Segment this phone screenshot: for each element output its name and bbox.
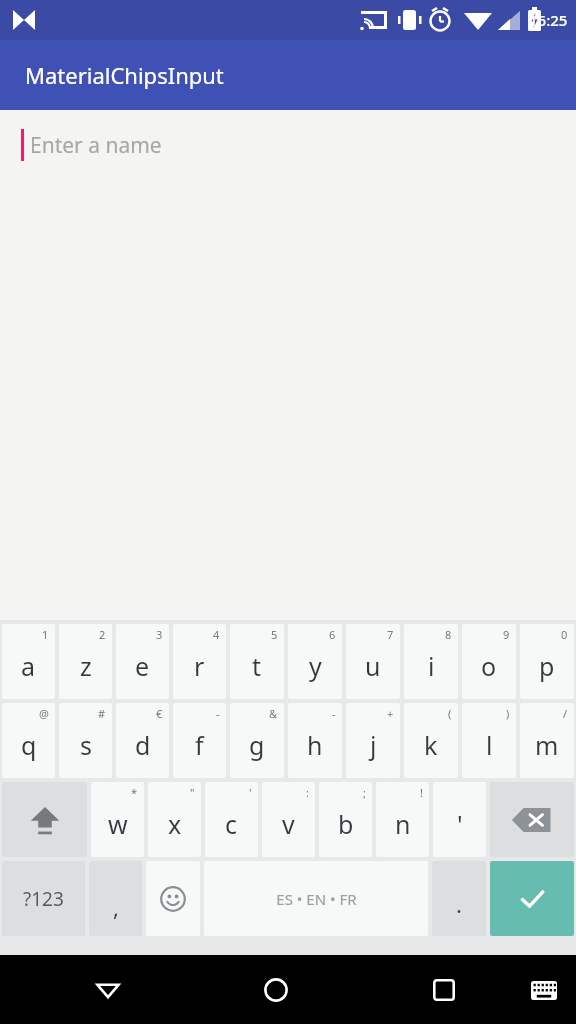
staticText: c <box>225 807 238 841</box>
button[interactable]: Switch keyboard <box>516 962 572 1018</box>
staticText: w <box>108 807 128 841</box>
staticText: u <box>365 649 381 683</box>
button[interactable]: & <box>230 703 284 778</box>
button[interactable]: ' <box>433 782 486 857</box>
button[interactable]: . <box>432 861 486 936</box>
staticText: j <box>370 728 377 762</box>
staticText: z <box>80 649 92 683</box>
staticText: k <box>424 728 438 762</box>
staticText: ! <box>420 785 423 800</box>
button[interactable]: ( <box>404 703 458 778</box>
staticText: y <box>309 649 322 683</box>
staticText: 4 <box>213 627 220 642</box>
staticText: € <box>156 706 163 721</box>
staticText: 16:25 <box>529 10 568 30</box>
staticText: ES • EN • FR <box>276 889 357 909</box>
button[interactable]: , <box>89 861 142 936</box>
button[interactable]: Hide keyboard <box>78 960 138 1020</box>
button[interactable]: + <box>346 703 400 778</box>
staticText: 5 <box>271 627 278 642</box>
staticText: * <box>131 785 138 800</box>
staticText: ) <box>506 706 510 721</box>
button[interactable]: ; <box>319 782 372 857</box>
staticText: e <box>135 649 150 683</box>
staticText: & <box>269 706 278 721</box>
button[interactable]: Enter a name <box>0 110 576 180</box>
button[interactable]: Emoji <box>146 861 200 936</box>
staticText: 7 <box>387 627 394 642</box>
staticText: # <box>98 706 106 721</box>
staticText: 3 <box>156 627 163 642</box>
staticText: 9 <box>503 627 510 642</box>
staticText: ' <box>249 785 252 800</box>
staticText: + <box>387 706 394 721</box>
button[interactable]: 9 <box>462 624 516 699</box>
staticText: m <box>535 728 559 762</box>
button[interactable]: - <box>173 703 226 778</box>
button[interactable]: " <box>148 782 201 857</box>
staticText: 0 <box>561 627 568 642</box>
button[interactable]: @ <box>2 703 55 778</box>
staticText: - <box>332 706 336 721</box>
button[interactable]: ES • EN • FR <box>204 861 428 936</box>
button[interactable]: # <box>59 703 112 778</box>
button[interactable]: ! <box>376 782 429 857</box>
staticText: p <box>539 649 555 683</box>
button[interactable]: ?123 <box>2 861 85 936</box>
staticText: t <box>252 649 262 683</box>
staticText: x <box>168 807 182 841</box>
staticText: / <box>563 706 568 721</box>
button[interactable]: Shift <box>2 782 87 857</box>
staticText: g <box>249 728 265 762</box>
staticText: a <box>21 649 36 683</box>
staticText: ?123 <box>23 886 64 912</box>
staticText: ; <box>363 785 366 800</box>
button[interactable]: / <box>520 703 574 778</box>
staticText: b <box>338 807 354 841</box>
button[interactable]: 1 <box>2 624 55 699</box>
staticText: : <box>306 785 309 800</box>
staticText: s <box>80 728 92 762</box>
staticText: @ <box>39 706 49 721</box>
staticText: " <box>190 785 195 800</box>
button[interactable]: 2 <box>59 624 112 699</box>
button[interactable]: 8 <box>404 624 458 699</box>
staticText: 1 <box>42 627 49 642</box>
button[interactable]: Home <box>246 960 306 1020</box>
button[interactable]: 6 <box>288 624 342 699</box>
staticText: f <box>195 728 204 762</box>
staticText: h <box>307 728 323 762</box>
staticText: 8 <box>445 627 452 642</box>
button[interactable]: Recent apps <box>414 960 474 1020</box>
staticText: 2 <box>99 627 106 642</box>
button[interactable]: ' <box>205 782 258 857</box>
button[interactable]: : <box>262 782 315 857</box>
staticText: i <box>428 649 435 683</box>
staticText: 6 <box>329 627 336 642</box>
button[interactable]: * <box>91 782 144 857</box>
button[interactable]: 4 <box>173 624 226 699</box>
staticText: MaterialChipsInput <box>25 60 224 90</box>
staticText: n <box>395 807 411 841</box>
button[interactable]: € <box>116 703 169 778</box>
button[interactable]: Backspace <box>490 782 574 857</box>
staticText: . <box>456 889 462 919</box>
staticText: , <box>113 892 119 922</box>
staticText: o <box>481 649 497 683</box>
staticText: ' <box>457 807 463 841</box>
staticText: Enter a name <box>30 131 162 160</box>
staticText: ( <box>448 706 452 721</box>
button[interactable]: 7 <box>346 624 400 699</box>
button[interactable]: 3 <box>116 624 169 699</box>
button[interactable]: Enter <box>490 861 574 936</box>
staticText: q <box>21 728 37 762</box>
staticText: r <box>194 649 205 683</box>
button[interactable]: 0 <box>520 624 574 699</box>
button[interactable]: ) <box>462 703 516 778</box>
staticText: d <box>135 728 151 762</box>
button[interactable]: - <box>288 703 342 778</box>
staticText: l <box>486 728 493 762</box>
staticText: v <box>282 807 295 841</box>
staticText: - <box>216 706 220 721</box>
button[interactable]: 5 <box>230 624 284 699</box>
